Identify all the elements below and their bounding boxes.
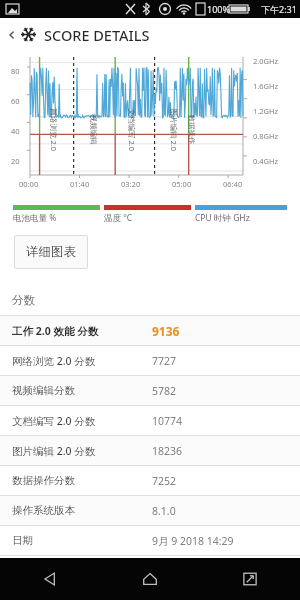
staticText: 03:20 — [121, 179, 141, 189]
staticText: 9136 — [152, 323, 180, 339]
staticText: CPU 时钟 GHz — [195, 212, 250, 224]
button[interactable]: 网络浏览 2.0 分数 — [0, 346, 300, 375]
button[interactable]: Back — [5, 21, 19, 49]
staticText: 80 — [11, 66, 20, 76]
staticText: 1.6GHz — [253, 81, 279, 91]
staticText: 01:40 — [70, 179, 90, 189]
staticText: 20 — [11, 156, 20, 166]
staticText: SCORE DETAILS — [44, 25, 150, 45]
staticText: 图片编辑 2.0 分数 — [12, 444, 152, 458]
button[interactable]: 视频编辑分数 — [0, 376, 300, 405]
staticText: 5782 — [152, 384, 177, 398]
staticText: 数据操作分数 — [12, 474, 152, 487]
staticText: 10774 — [152, 414, 183, 428]
staticText: 操作系统版本 — [12, 504, 152, 517]
staticText: 06:40 — [223, 179, 243, 189]
staticText: 100% — [207, 3, 230, 15]
button[interactable]: Recents — [200, 558, 300, 600]
staticText: 电池电量 % — [13, 212, 57, 224]
staticText: 8.1.0 — [152, 504, 176, 518]
button[interactable]: Back — [0, 558, 100, 600]
staticText: 网络浏览 2.0 — [48, 108, 58, 151]
staticText: 05:00 — [172, 179, 192, 189]
button[interactable]: 详细图表 — [14, 235, 88, 269]
staticText: 视频编辑分数 — [12, 384, 152, 397]
staticText: 工作 2.0 效能 分数 — [12, 324, 152, 338]
staticText: 详细图表 — [26, 244, 76, 260]
button[interactable]: 工作 2.0 效能 分数 — [0, 316, 300, 345]
button[interactable]: 数据操作分数 — [0, 466, 300, 495]
staticText: 视频编辑 — [88, 114, 97, 144]
button[interactable]: Home — [100, 558, 200, 600]
staticText: 文档编写 2.0 — [126, 108, 136, 151]
staticText: 下午2:31 — [261, 3, 297, 15]
staticText: 日期 — [12, 534, 152, 547]
staticText: 数据操作 — [186, 114, 195, 144]
button[interactable]: 文档编写 2.0 分数 — [0, 406, 300, 435]
staticText: 60 — [11, 96, 20, 106]
staticText: 0.8GHz — [253, 131, 279, 141]
staticText: 0.4GHz — [253, 156, 279, 166]
staticText: 2.0GHz — [253, 56, 279, 66]
button[interactable]: 图片编辑 2.0 分数 — [0, 436, 300, 465]
staticText: 图片编辑 2.0 — [168, 108, 178, 151]
staticText: 文档编写 2.0 分数 — [12, 414, 152, 428]
staticText: 温度 °C — [104, 212, 133, 224]
button[interactable]: 日期 — [0, 526, 300, 555]
staticText: 分数 — [12, 293, 35, 307]
staticText: 40 — [11, 126, 20, 136]
staticText: 18236 — [152, 444, 183, 458]
staticText: 00:00 — [19, 179, 39, 189]
button[interactable]: 操作系统版本 — [0, 496, 300, 525]
staticText: 1.2GHz — [253, 106, 279, 116]
staticText: 7252 — [152, 474, 177, 488]
staticText: 网络浏览 2.0 分数 — [12, 354, 152, 368]
staticText: 9月 9 2018 14:29 — [152, 534, 234, 548]
staticText: 7727 — [152, 354, 177, 368]
